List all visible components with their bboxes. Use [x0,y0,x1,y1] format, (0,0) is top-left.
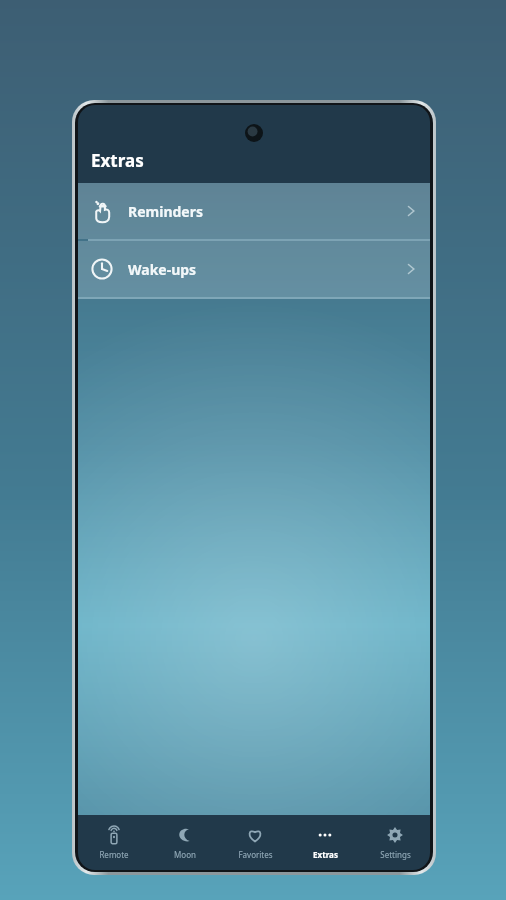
button[interactable]: Remote [78,815,149,870]
staticText: Favorites [238,849,273,860]
button[interactable]: Extras [290,815,360,870]
button[interactable]: Favorites [220,815,290,870]
staticText: Reminders [128,202,203,221]
button[interactable]: Moon [149,815,220,870]
staticText: Wake-ups [128,260,197,279]
staticText: Settings [380,849,411,860]
staticText: Extras [91,149,144,172]
button[interactable]: Wake-ups [78,241,430,297]
button[interactable]: Reminders [78,183,430,239]
staticText: Remote [99,849,129,860]
staticText: Moon [174,849,196,860]
button[interactable]: Settings [360,815,430,870]
staticText: Extras [313,849,338,860]
